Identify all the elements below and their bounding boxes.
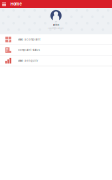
button[interactable]: Menu bbox=[0, 0, 10, 8]
staticText: Complaint status bbox=[17, 48, 39, 52]
staticText: j.smith@mail.com bbox=[48, 27, 64, 29]
staticText: John bbox=[52, 23, 59, 26]
staticText: Make a enquiry bbox=[17, 59, 37, 62]
staticText: Home bbox=[10, 2, 21, 6]
button[interactable]: Make a complaint bbox=[0, 34, 112, 44]
button[interactable]: Complaint status bbox=[0, 45, 112, 55]
staticText: Make a complaint bbox=[17, 38, 40, 41]
button[interactable]: Make a enquiry bbox=[0, 56, 112, 66]
